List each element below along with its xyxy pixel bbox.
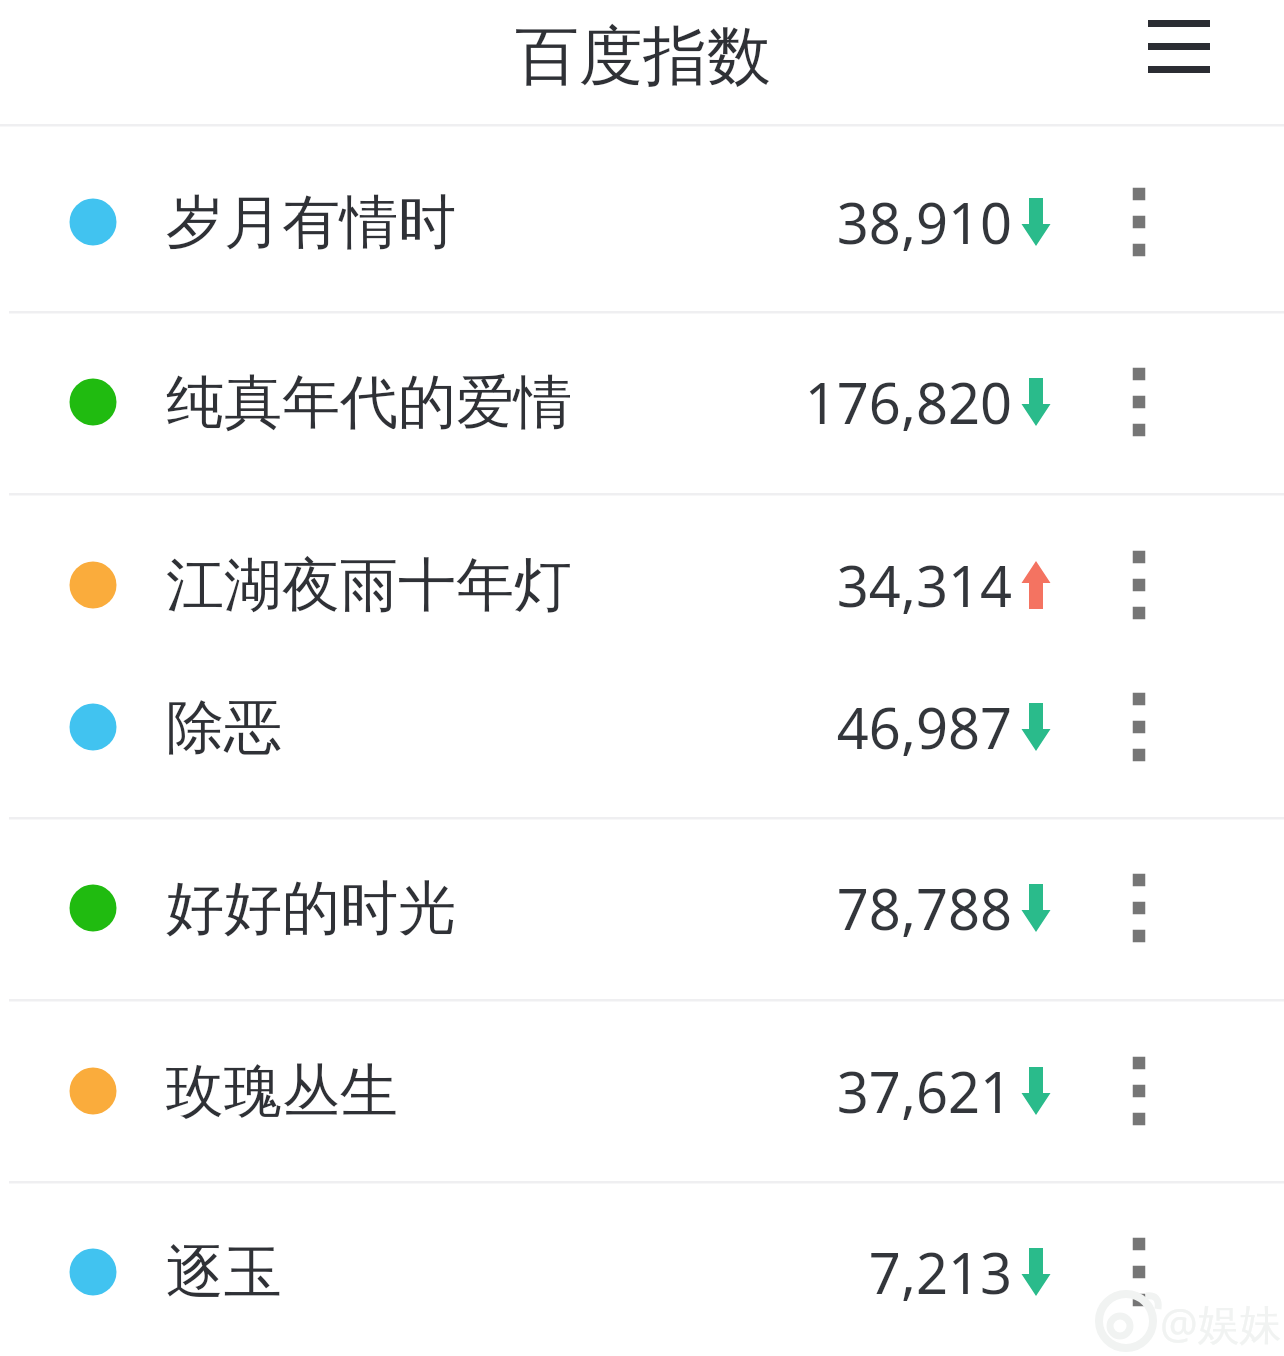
staticText: 百度指数 [515, 16, 771, 97]
button[interactable]: 百度指数 [379, 6, 907, 106]
button[interactable] [0, 838, 1284, 978]
staticText: 逐玉 [166, 1236, 282, 1309]
staticText: 176,820 [804, 364, 1012, 440]
button[interactable]: More options [1099, 535, 1179, 635]
staticText: 岁月有情时 [166, 186, 456, 259]
staticText: 江湖夜雨十年灯 [166, 549, 572, 622]
button[interactable] [0, 515, 1284, 655]
button[interactable] [0, 1202, 1284, 1342]
staticText: 玫瑰丛生 [166, 1055, 398, 1128]
button[interactable]: More options [1099, 1041, 1179, 1141]
button[interactable]: More options [1099, 172, 1179, 272]
button[interactable]: More options [1099, 352, 1179, 452]
button[interactable] [0, 152, 1284, 292]
button[interactable] [0, 1021, 1284, 1161]
staticText: 纯真年代的爱情 [166, 366, 572, 439]
staticText: 37,621 [836, 1053, 1012, 1129]
staticText: 34,314 [836, 547, 1012, 623]
staticText: @娱妹— [1160, 1294, 1284, 1350]
button[interactable]: Menu [1126, 2, 1234, 94]
staticText: 好好的时光 [166, 872, 456, 945]
button[interactable] [0, 332, 1284, 472]
staticText: 7,213 [868, 1234, 1012, 1310]
staticText: 除恶 [166, 691, 282, 764]
staticText: 78,788 [836, 870, 1012, 946]
staticText: 38,910 [836, 184, 1012, 260]
button[interactable]: More options [1099, 677, 1179, 777]
staticText: 46,987 [836, 689, 1012, 765]
button[interactable] [0, 657, 1284, 797]
button[interactable]: More options [1099, 858, 1179, 958]
button[interactable]: More options [1099, 1222, 1179, 1322]
